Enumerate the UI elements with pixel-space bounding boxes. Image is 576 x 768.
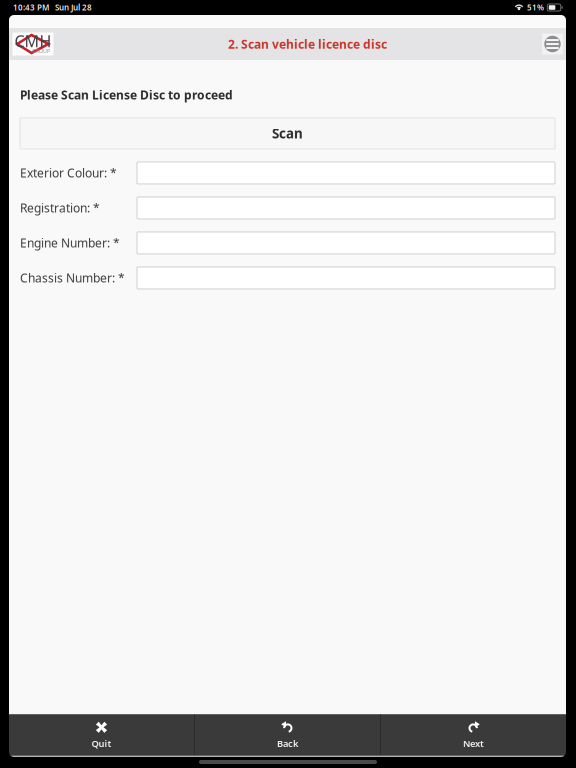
button[interactable]: Scan [20,118,555,149]
button[interactable]: Engine Number: * [137,232,555,254]
staticText: 10:43 PM [13,2,49,13]
button[interactable]: Quit [9,714,194,755]
button[interactable]: Registration: * [137,197,555,219]
button[interactable]: CMH Group [12,32,53,55]
staticText: Back [277,737,298,750]
button[interactable]: Next [381,714,566,755]
staticText: Sun Jul 28 [55,2,92,13]
staticText: Chassis Number: * [20,270,125,286]
button[interactable]: Menu [542,33,563,54]
button[interactable]: Back [195,714,380,755]
staticText: Scan [272,125,303,142]
staticText: Next [463,737,484,750]
button[interactable]: Exterior Colour: * [137,162,555,184]
staticText: Quit [91,737,111,750]
button[interactable]: Chassis Number: * [137,267,555,289]
staticText: Exterior Colour: * [20,165,117,181]
staticText: 51% [527,2,544,13]
staticText: GROUP [32,47,50,55]
staticText: Please Scan License Disc to proceed [20,87,233,103]
staticText: 2. Scan vehicle licence disc [228,36,387,52]
staticText: Engine Number: * [20,235,120,251]
staticText: CMH [14,30,51,52]
staticText: Registration: * [20,200,100,216]
